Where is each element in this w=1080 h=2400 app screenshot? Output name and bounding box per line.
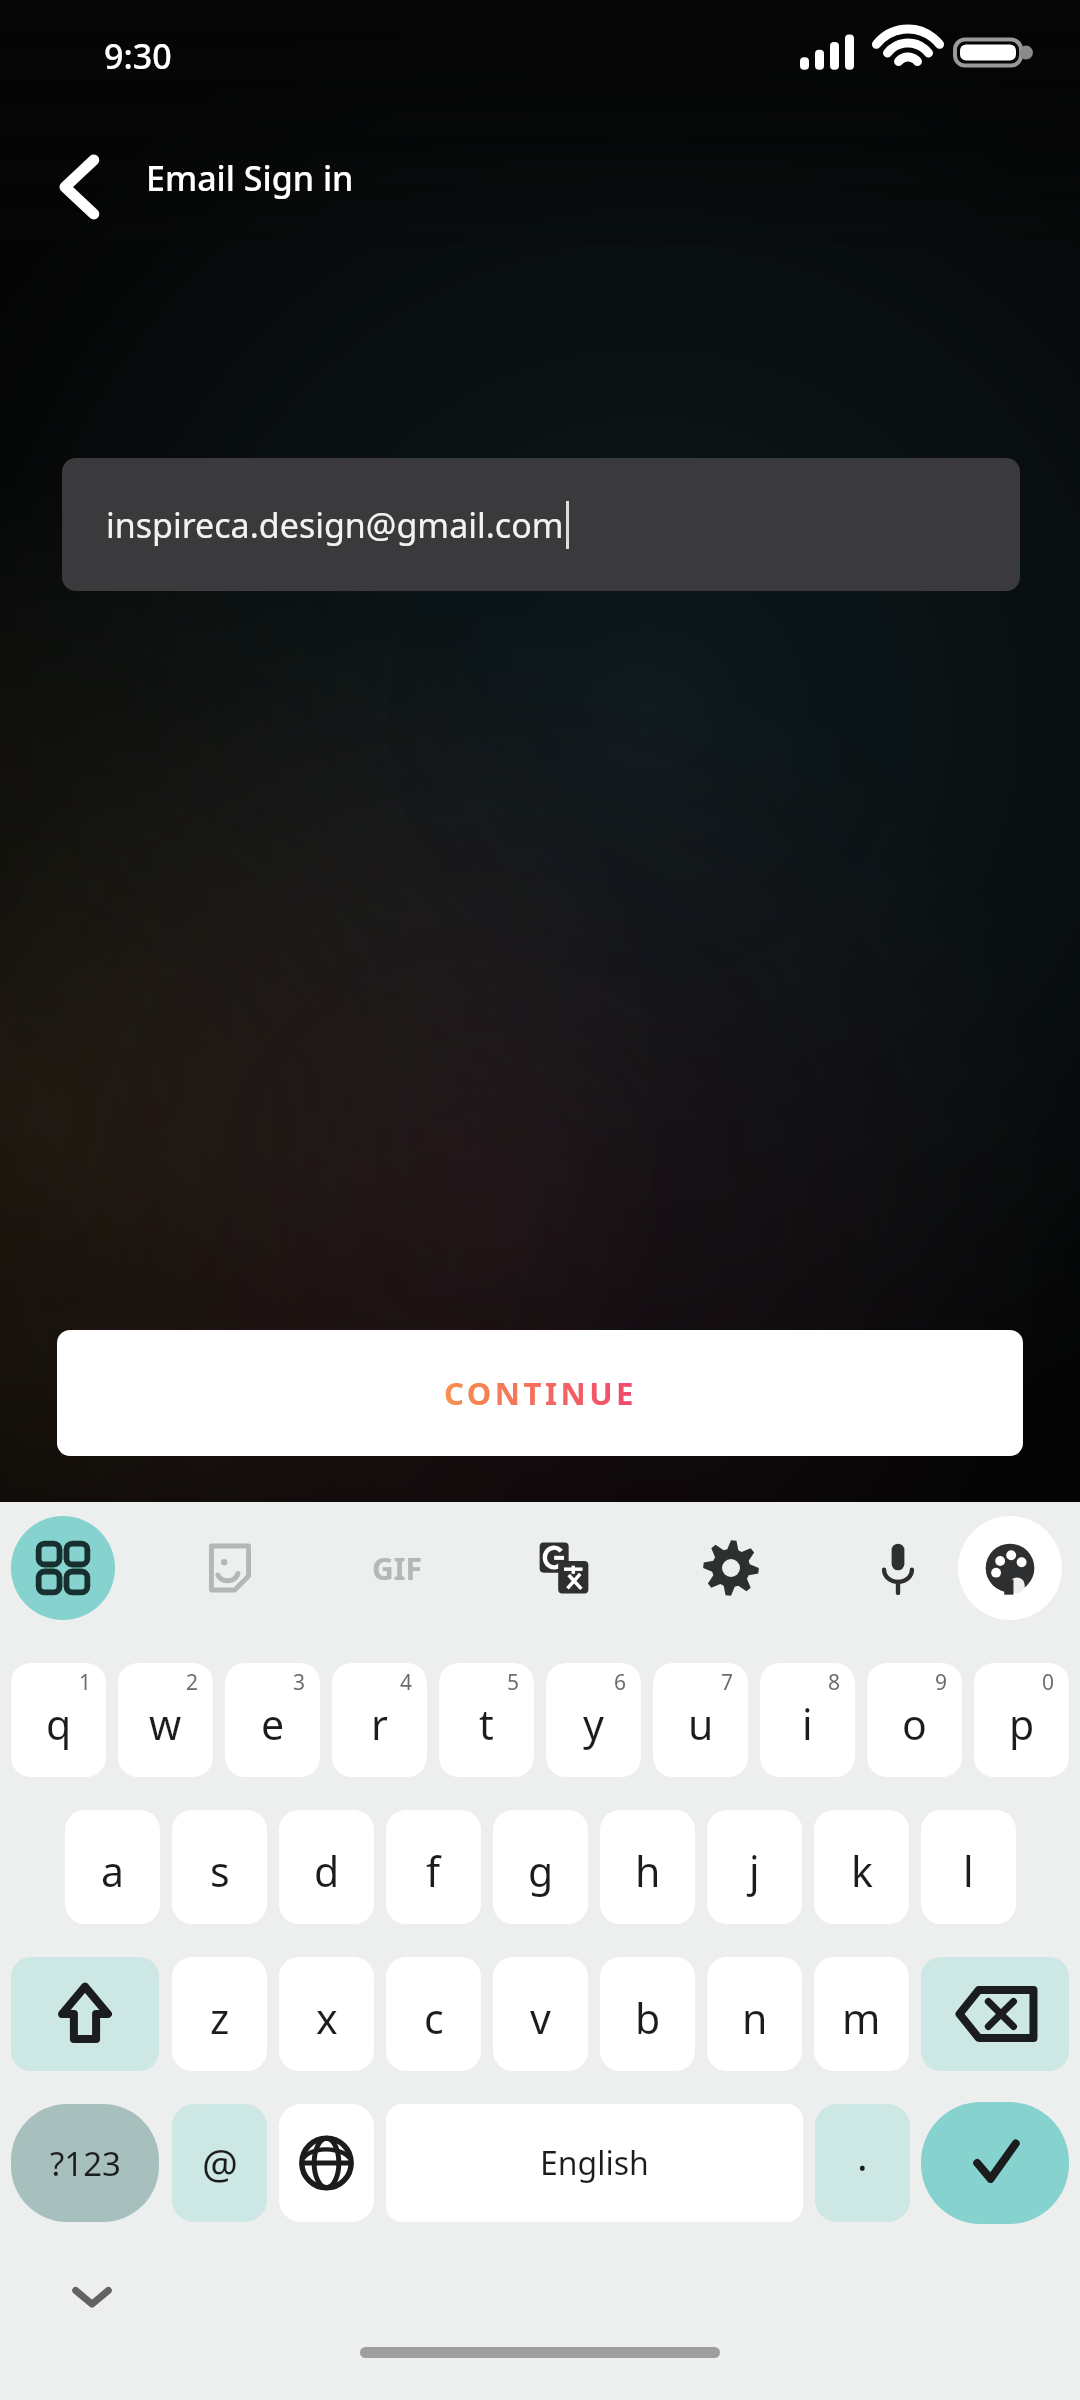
staticText: English (540, 2141, 649, 2185)
staticText: d (314, 1843, 340, 1899)
button[interactable]: x (279, 1957, 374, 2071)
staticText: r (371, 1696, 388, 1752)
staticText: 1 (79, 1668, 92, 1697)
staticText: n (742, 1990, 768, 2046)
button[interactable]: i (760, 1663, 855, 1777)
staticText: k (851, 1843, 873, 1899)
staticText: 7 (721, 1668, 734, 1697)
staticText: GIF (372, 1548, 422, 1589)
button[interactable]: d (279, 1810, 374, 1924)
button[interactable]: w (118, 1663, 213, 1777)
button[interactable]: j (707, 1810, 802, 1924)
button[interactable]: Emoji keyboard (11, 1516, 115, 1620)
staticText: 3 (293, 1668, 306, 1697)
staticText: 4 (400, 1668, 413, 1697)
button[interactable]: t (439, 1663, 534, 1777)
staticText: s (210, 1843, 230, 1899)
staticText: 6 (614, 1668, 627, 1697)
button[interactable]: h (600, 1810, 695, 1924)
staticText: f (426, 1843, 441, 1899)
button[interactable]: Shift (11, 1957, 159, 2071)
button[interactable]: k (814, 1810, 909, 1924)
button[interactable]: b (600, 1957, 695, 2071)
button[interactable]: Back (38, 142, 128, 232)
button[interactable]: ?123 (11, 2104, 159, 2222)
button[interactable]: . (815, 2104, 910, 2222)
staticText: 0 (1042, 1668, 1055, 1697)
button[interactable]: @ (172, 2104, 267, 2222)
staticText: @ (202, 2136, 238, 2190)
button[interactable]: a (65, 1810, 160, 1924)
staticText: j (749, 1843, 760, 1899)
button[interactable]: Hide keyboard (58, 2262, 126, 2330)
staticText: u (688, 1696, 714, 1752)
staticText: h (635, 1843, 661, 1899)
staticText: i (802, 1696, 813, 1752)
staticText: w (149, 1696, 182, 1752)
button[interactable]: p (974, 1663, 1069, 1777)
button[interactable]: u (653, 1663, 748, 1777)
button[interactable]: Stickers (178, 1516, 282, 1620)
button[interactable]: c (386, 1957, 481, 2071)
staticText: o (902, 1696, 927, 1752)
staticText: b (635, 1990, 661, 2046)
button[interactable]: Voice input (846, 1516, 950, 1620)
staticText: y (583, 1696, 604, 1752)
button[interactable]: Translate (512, 1516, 616, 1620)
button[interactable]: Change language (279, 2104, 374, 2222)
button[interactable]: q (11, 1663, 106, 1777)
button[interactable]: inspireca.design@gmail.com (62, 458, 1020, 591)
button[interactable]: CONTINUE (57, 1330, 1023, 1456)
staticText: e (261, 1696, 285, 1752)
staticText: 5 (507, 1668, 520, 1697)
button[interactable]: v (493, 1957, 588, 2071)
staticText: m (842, 1990, 881, 2046)
button[interactable]: e (225, 1663, 320, 1777)
button[interactable]: n (707, 1957, 802, 2071)
button[interactable]: Enter (921, 2102, 1069, 2224)
button[interactable]: z (172, 1957, 267, 2071)
staticText: a (101, 1843, 125, 1899)
button[interactable]: GIF (345, 1516, 449, 1620)
staticText: 9:30 (104, 33, 172, 79)
staticText: . (857, 2128, 868, 2182)
button[interactable]: r (332, 1663, 427, 1777)
staticText: inspireca.design@gmail.com (106, 502, 564, 548)
button[interactable]: y (546, 1663, 641, 1777)
button[interactable]: English (386, 2104, 803, 2222)
button[interactable]: s (172, 1810, 267, 1924)
button[interactable]: m (814, 1957, 909, 2071)
button[interactable]: f (386, 1810, 481, 1924)
staticText: q (46, 1696, 72, 1752)
staticText: v (530, 1990, 551, 2046)
staticText: 9 (935, 1668, 948, 1697)
button[interactable]: Backspace (921, 1957, 1069, 2071)
button[interactable]: Themes (958, 1516, 1062, 1620)
button[interactable]: Settings (679, 1516, 783, 1620)
staticText: x (316, 1990, 338, 2046)
staticText: Email Sign in (146, 155, 354, 201)
staticText: g (528, 1843, 554, 1899)
staticText: 2 (186, 1668, 199, 1697)
staticText: t (479, 1696, 494, 1752)
button[interactable]: o (867, 1663, 962, 1777)
staticText: CONTINUE (444, 1372, 637, 1414)
button[interactable]: l (921, 1810, 1016, 1924)
staticText: 8 (828, 1668, 841, 1697)
staticText: ?123 (50, 2141, 121, 2186)
staticText: l (963, 1843, 974, 1899)
staticText: p (1009, 1696, 1035, 1752)
staticText: z (210, 1990, 230, 2046)
button[interactable]: g (493, 1810, 588, 1924)
staticText: c (424, 1990, 444, 2046)
